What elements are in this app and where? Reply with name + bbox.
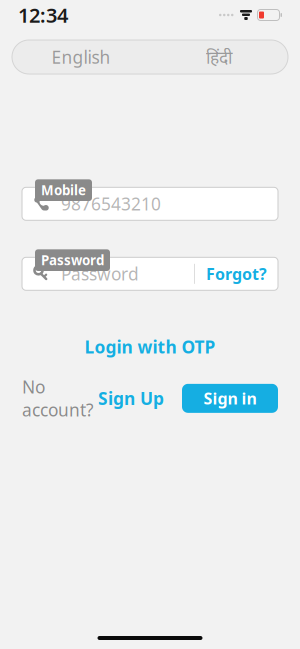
- button[interactable]: Sign Up: [98, 387, 164, 410]
- staticText: Login with OTP: [84, 335, 215, 358]
- staticText: 12:34: [18, 2, 68, 28]
- button[interactable]: English: [12, 40, 150, 74]
- staticText: हिंदी: [206, 45, 232, 68]
- staticText: Sign Up: [98, 387, 164, 410]
- button[interactable]: Login with OTP: [76, 332, 223, 361]
- button[interactable]: Forgot?: [195, 258, 278, 289]
- button[interactable]: हिंदी: [150, 40, 288, 74]
- staticText: 9876543210: [61, 192, 161, 215]
- staticText: Password: [41, 251, 104, 269]
- staticText: Mobile: [41, 181, 86, 199]
- staticText: English: [51, 45, 110, 68]
- button[interactable]: Sign in: [182, 384, 278, 413]
- staticText: Password: [61, 262, 139, 285]
- staticText: Forgot?: [206, 263, 267, 284]
- staticText: Sign in: [203, 388, 256, 409]
- staticText: No account?: [22, 375, 94, 421]
